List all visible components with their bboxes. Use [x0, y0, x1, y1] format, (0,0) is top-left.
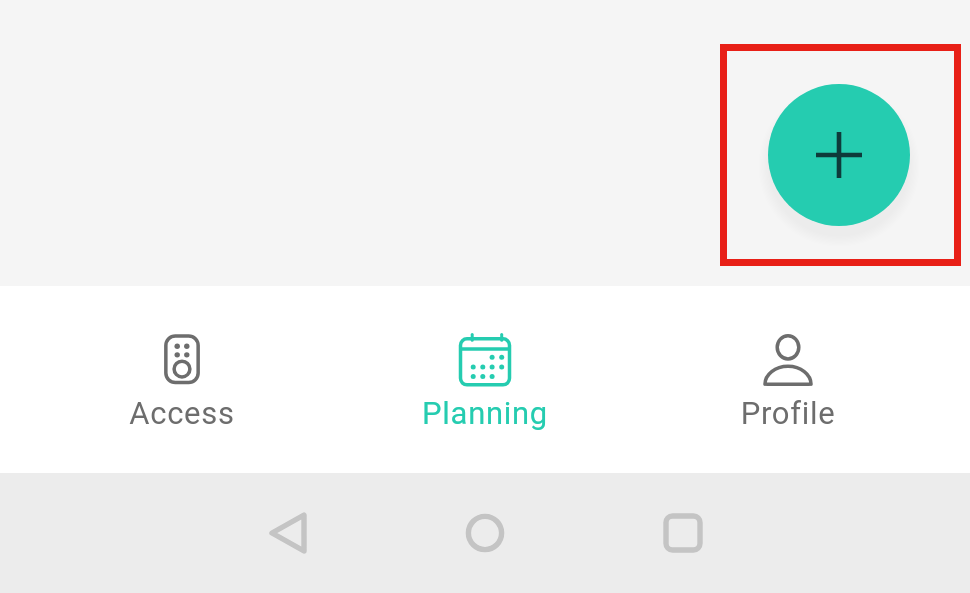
button[interactable]: Access — [32, 286, 332, 473]
button[interactable]: Planning — [335, 286, 635, 473]
button[interactable]: Add — [768, 84, 910, 226]
button[interactable]: Home — [455, 503, 515, 563]
button[interactable]: Back — [258, 503, 318, 563]
staticText: Planning — [335, 395, 635, 431]
button[interactable]: Recent apps — [653, 503, 713, 563]
staticText: Profile — [638, 395, 938, 431]
button[interactable]: Profile — [638, 286, 938, 473]
staticText: Access — [32, 395, 332, 431]
